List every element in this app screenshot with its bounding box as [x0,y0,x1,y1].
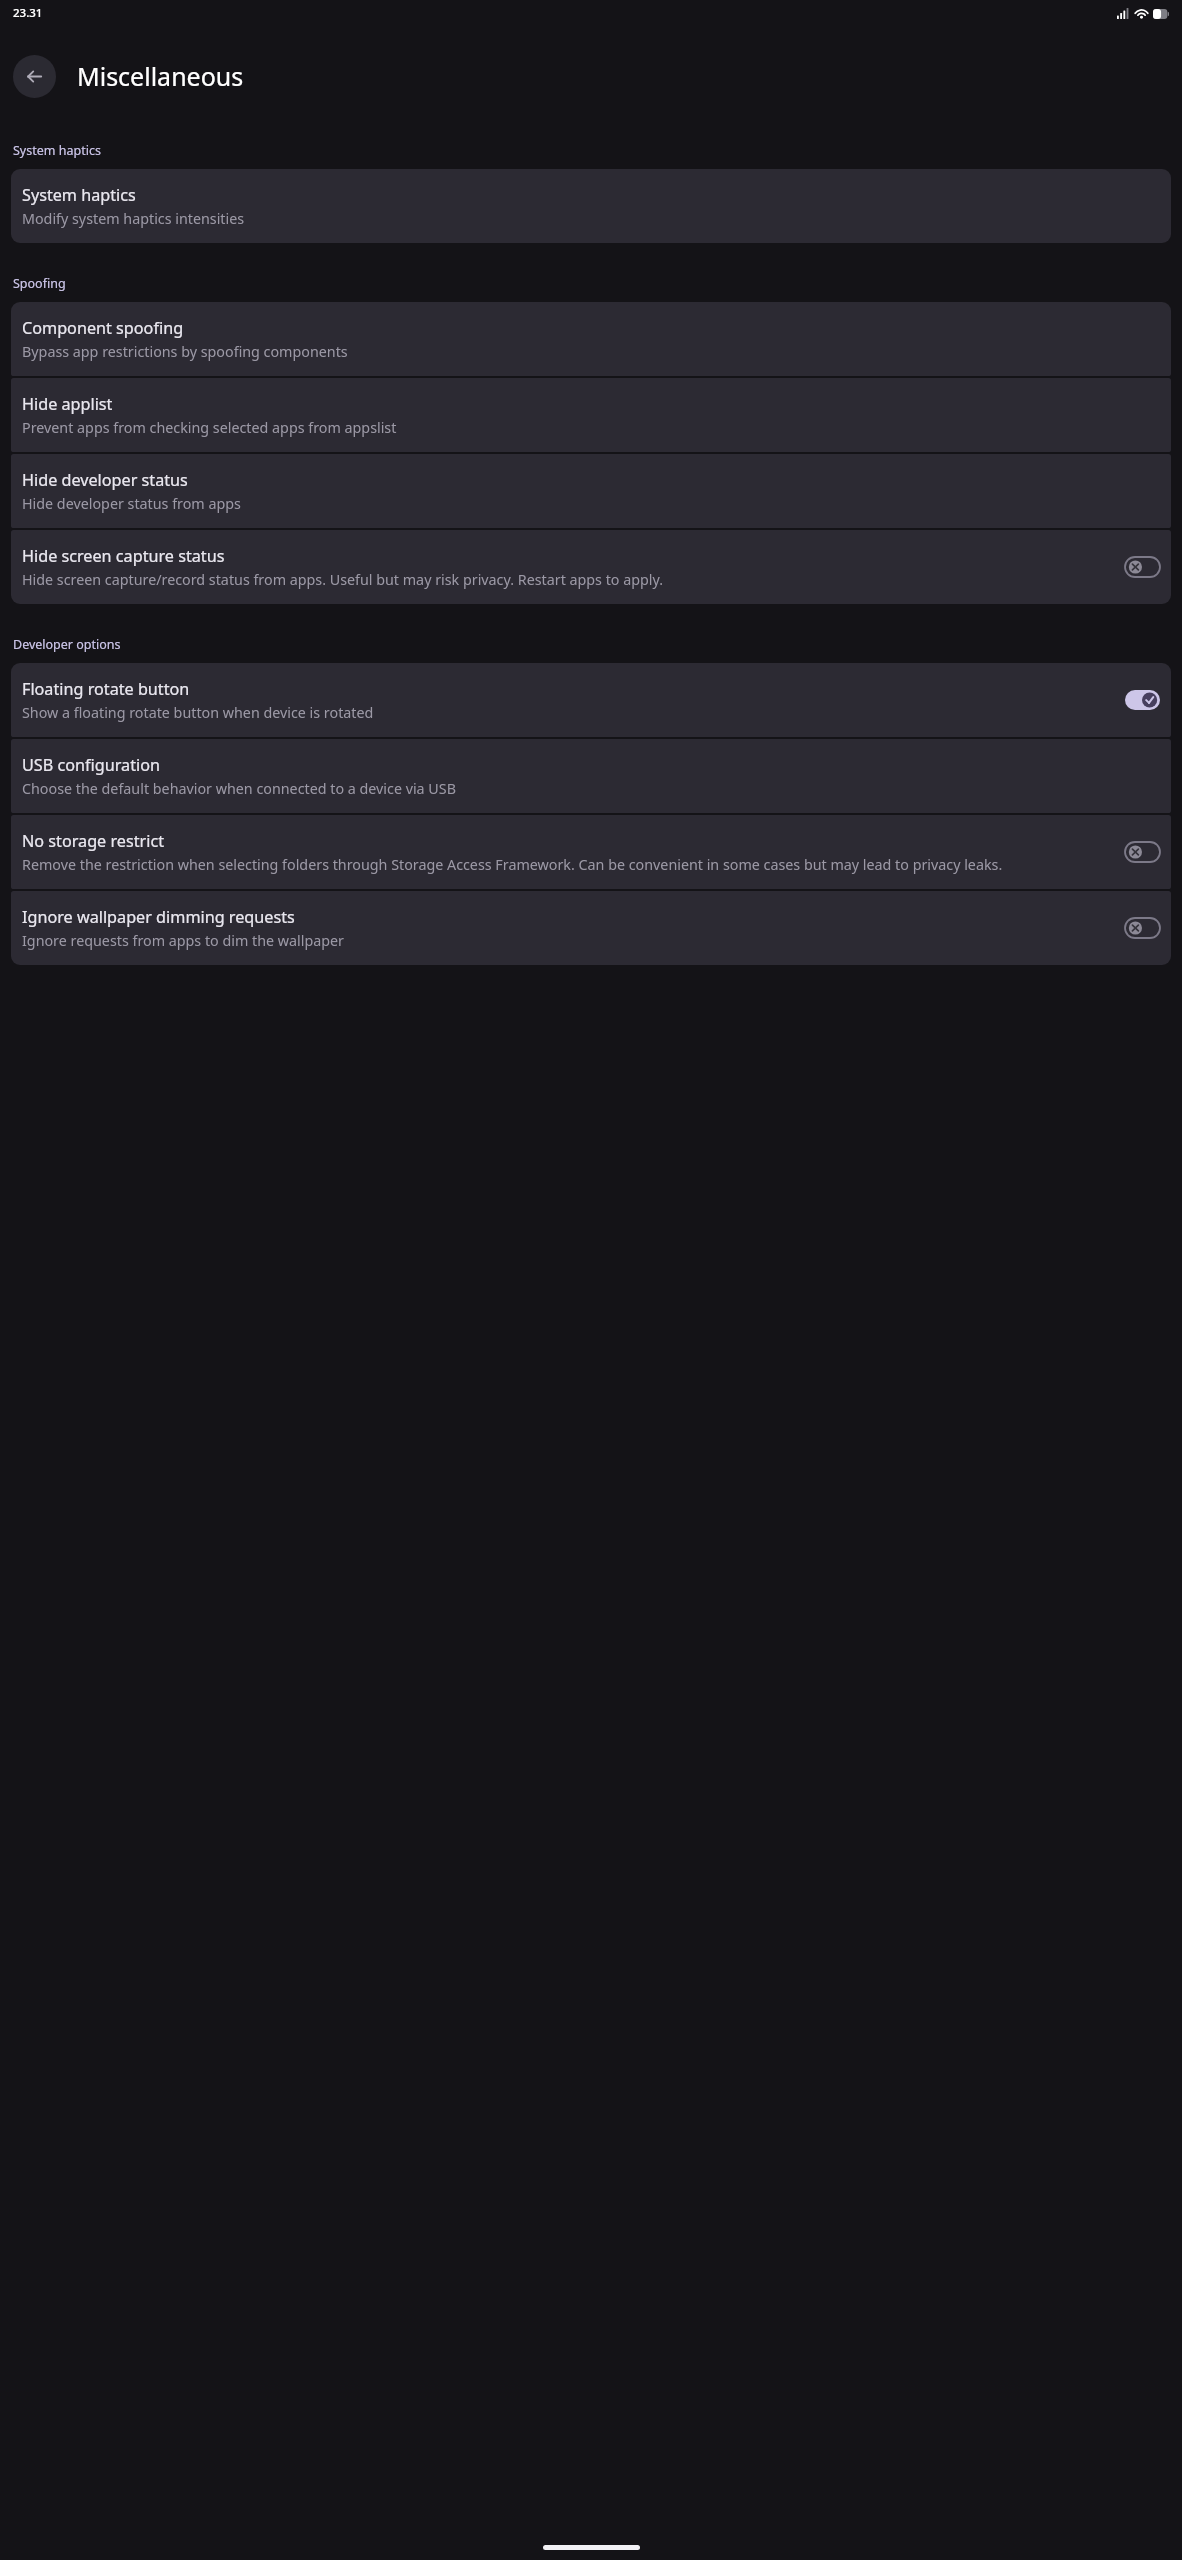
button[interactable]: Component spoofing [11,302,1171,376]
staticText: Spoofing [13,275,66,292]
staticText: No storage restrict [22,830,164,852]
staticText: Hide developer status from apps [22,494,241,513]
staticText: System haptics [22,184,136,206]
staticText: Modify system haptics intensities [22,209,245,228]
staticText: USB configuration [22,754,160,776]
staticText: Ignore wallpaper dimming requests [22,906,295,928]
staticText: Hide developer status [22,469,188,491]
button[interactable]: Hide applist [11,378,1171,452]
staticText: Remove the restriction when selecting fo… [22,855,1003,874]
staticText: Bypass app restrictions by spoofing comp… [22,342,348,361]
staticText: Show a floating rotate button when devic… [22,703,374,722]
staticText: Component spoofing [22,317,184,339]
staticText: Choose the default behavior when connect… [22,779,456,798]
staticText: Ignore requests from apps to dim the wal… [22,931,344,950]
staticText: Hide screen capture status [22,545,225,567]
staticText: Hide screen capture/record status from a… [22,570,664,589]
staticText: Hide applist [22,393,113,415]
staticText: System haptics [13,142,101,159]
button[interactable]: Floating rotate button [11,663,1171,737]
button[interactable]: System haptics [11,169,1171,243]
button[interactable]: Back [13,55,56,98]
button[interactable]: Ignore wallpaper dimming requests [11,891,1171,965]
staticText: Miscellaneous [77,59,244,93]
button[interactable]: USB configuration [11,739,1171,813]
staticText: Prevent apps from checking selected apps… [22,418,397,437]
staticText: Developer options [13,636,121,653]
staticText: Floating rotate button [22,678,190,700]
button[interactable]: Hide screen capture status [11,530,1171,604]
staticText: 23.31 [13,5,43,21]
button[interactable]: Hide developer status [11,454,1171,528]
button[interactable]: No storage restrict [11,815,1171,889]
